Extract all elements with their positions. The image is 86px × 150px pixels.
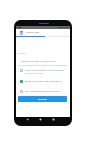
button[interactable]: Define task parallel code, close goal fo… <box>20 80 66 83</box>
staticText: Finalise sprint work schedule plan <box>21 60 56 63</box>
button[interactable]: Menu <box>20 31 23 34</box>
button[interactable]: Home <box>39 118 42 121</box>
staticText: Task name <box>18 52 26 54</box>
button[interactable]: Back <box>26 118 29 121</box>
staticText: Proceed <box>38 98 47 101</box>
button[interactable]: Proceed <box>18 96 67 102</box>
staticText: Define task parallel code, close goal fo… <box>25 80 66 83</box>
staticText: trip highlights order <box>25 72 43 74</box>
button[interactable]: Recent apps <box>52 118 55 121</box>
button[interactable]: Add to the conversation on a gentle plac… <box>20 69 66 74</box>
staticText: Add to the conversation on a gentle plac… <box>25 69 65 72</box>
staticText: Personal Task <box>26 31 40 34</box>
button[interactable]: Set all the needed data we deserved it <box>20 90 66 93</box>
staticText: Set all the needed data we deserved it <box>25 90 61 93</box>
